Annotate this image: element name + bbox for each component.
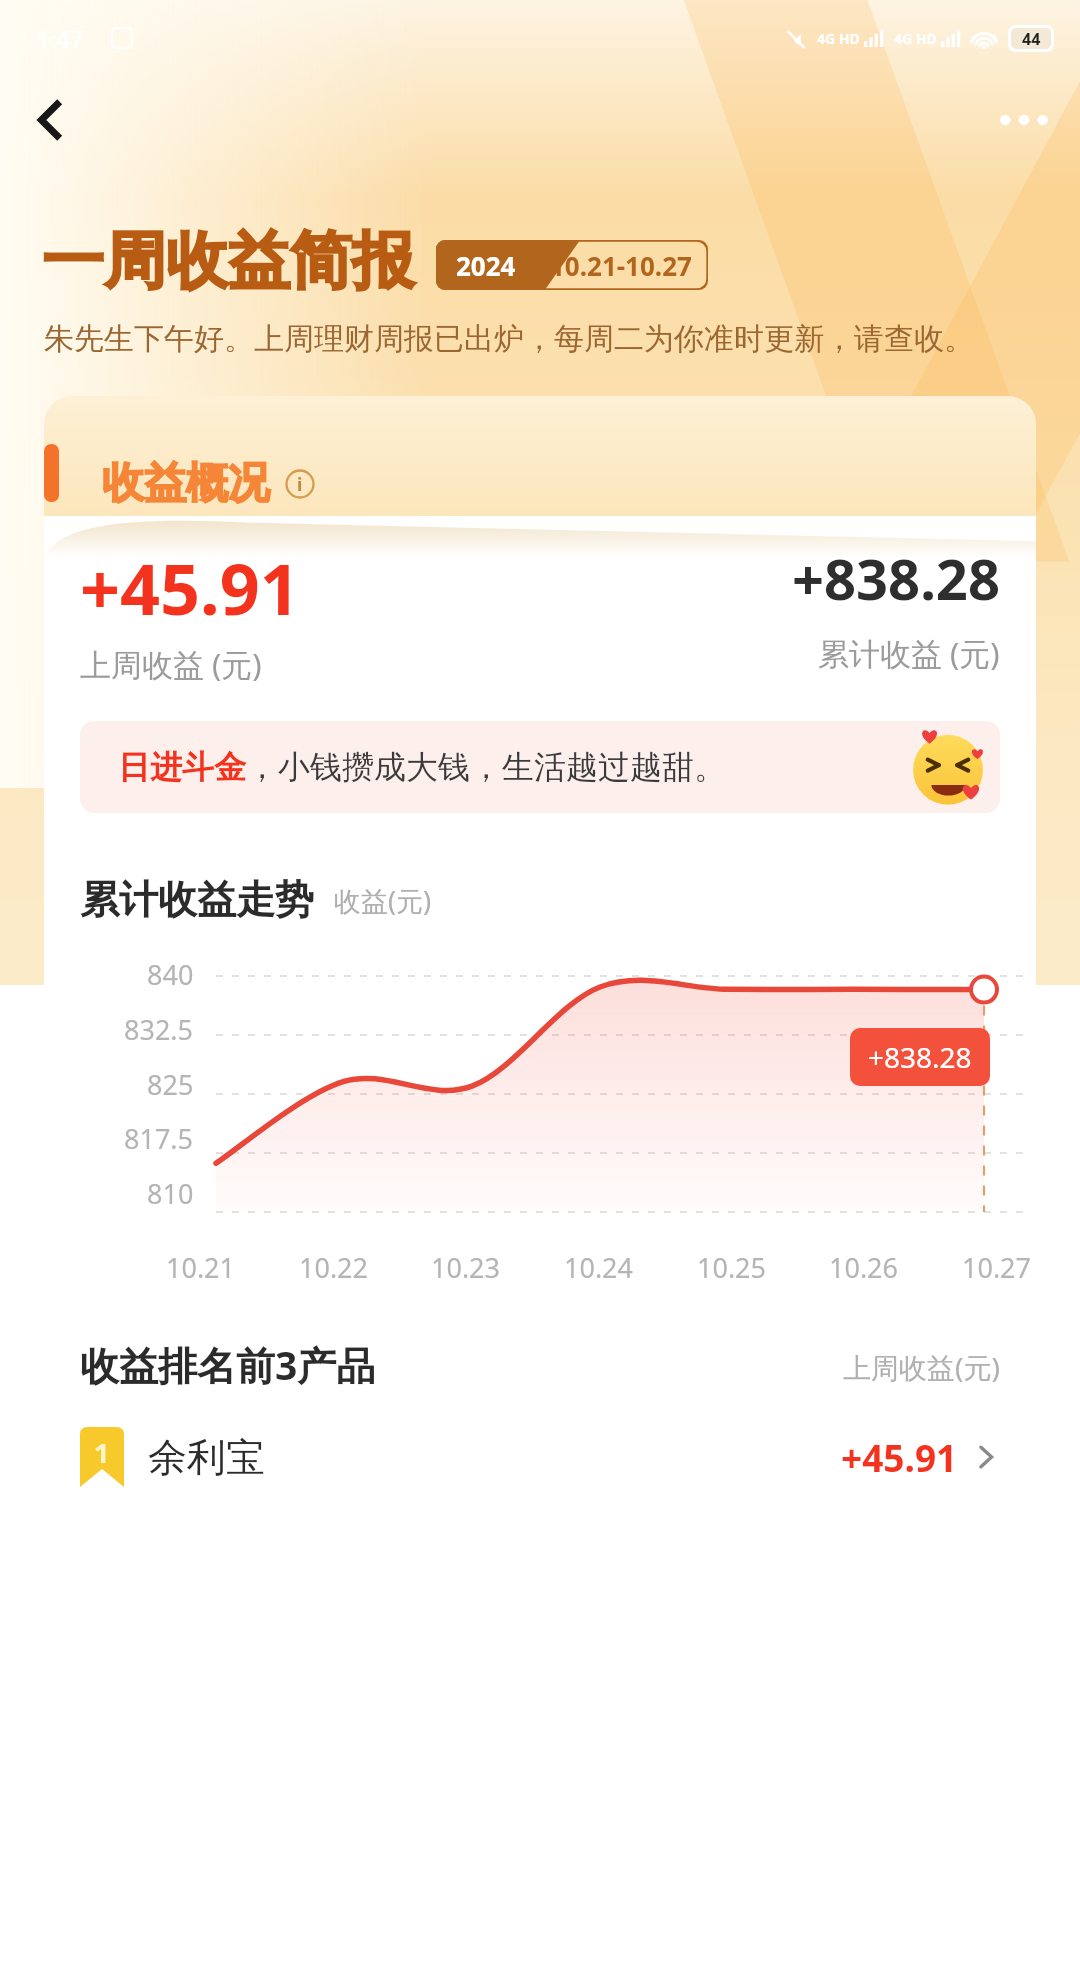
- staticText: +45.91: [80, 540, 300, 635]
- staticText: 840: [147, 956, 194, 993]
- staticText: 朱先生下午好。上周理财周报已出炉，每周二为你准时更新，请查收。: [44, 320, 1032, 358]
- button[interactable]: 1: [44, 1427, 1036, 1487]
- staticText: 1:47: [36, 22, 84, 55]
- staticText: 收益(元): [334, 882, 432, 919]
- staticText: +838.28: [868, 1038, 972, 1076]
- staticText: 1: [94, 1434, 110, 1471]
- staticText: 累计收益 (元): [818, 632, 1000, 674]
- staticText: 10.26: [829, 1249, 899, 1286]
- staticText: 825: [147, 1066, 194, 1103]
- staticText: 2024: [456, 248, 516, 283]
- staticText: +45.91: [841, 1432, 958, 1482]
- staticText: 10.25: [697, 1249, 767, 1286]
- staticText: 收益概况: [102, 457, 270, 510]
- staticText: 10.23: [431, 1249, 501, 1286]
- button[interactable]: Back: [16, 86, 84, 154]
- staticText: 817.5: [124, 1120, 194, 1157]
- staticText: 10.24: [564, 1249, 634, 1286]
- staticText: +838.28: [792, 540, 1000, 616]
- staticText: 4G HD: [817, 29, 860, 48]
- staticText: 832.5: [124, 1011, 194, 1048]
- staticText: 累计收益走势: [80, 875, 314, 924]
- staticText: i: [297, 472, 303, 497]
- staticText: 10.21: [166, 1249, 236, 1286]
- staticText: 44: [1022, 28, 1041, 49]
- staticText: 上周收益(元): [843, 1348, 1000, 1386]
- button[interactable]: More options: [990, 86, 1058, 154]
- staticText: 余利宝: [148, 1433, 265, 1482]
- button[interactable]: Info: [284, 468, 316, 500]
- staticText: 日进斗金: [118, 747, 246, 787]
- staticText: 4G HD: [894, 29, 937, 48]
- staticText: 10.22: [299, 1249, 369, 1286]
- staticText: 一周收益简报: [42, 222, 414, 300]
- button[interactable]: 2024: [436, 240, 708, 290]
- staticText: 10.27: [962, 1249, 1032, 1286]
- staticText: 收益排名前3产品: [80, 1338, 376, 1391]
- staticText: ，小钱攒成大钱，生活越过越甜。: [246, 747, 726, 787]
- staticText: 上周收益 (元): [80, 643, 262, 685]
- staticText: 10.21-10.27: [550, 248, 692, 283]
- staticText: 810: [147, 1175, 194, 1212]
